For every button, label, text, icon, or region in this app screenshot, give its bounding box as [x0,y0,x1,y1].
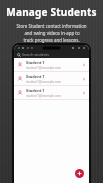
staticText: Student 1 [26,74,45,79]
button[interactable]: Add student [75,169,84,178]
staticText: Student 1 [26,60,45,65]
staticText: student1@example.com [26,94,62,98]
button[interactable]: Search students [14,51,89,58]
staticText: Store Student contact information [16,23,87,29]
staticText: Manage Students [6,5,97,19]
staticText: Search students [22,52,50,57]
staticText: track progress and lessons. [23,37,80,43]
staticText: student1@example.com [26,66,62,70]
staticText: student1@example.com [26,80,62,84]
button[interactable]: Student 1 [14,72,89,85]
button[interactable]: Student 1 [14,58,89,71]
staticText: and swing videos in-app to [24,30,80,36]
staticText: Student 1 [26,88,45,93]
button[interactable]: Student 1 [14,86,89,99]
